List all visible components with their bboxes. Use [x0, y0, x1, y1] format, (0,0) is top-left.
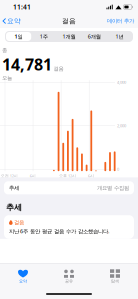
button[interactable]: 탐색: [92, 264, 138, 289]
staticText: 오전 12시: [1, 173, 18, 178]
staticText: 6시: [30, 173, 36, 178]
staticText: 14,781: [2, 54, 52, 75]
staticText: 1주: [40, 33, 48, 40]
button[interactable]: 요약: [0, 14, 24, 28]
staticText: 걸음: [62, 17, 76, 25]
staticText: 추세: [9, 185, 19, 191]
staticText: 지난 6주 동안 평균 걸음 수가 감소했습니다.: [9, 228, 109, 235]
button[interactable]: 공유: [46, 264, 92, 289]
staticText: 6시: [88, 173, 94, 178]
staticText: 공유: [65, 279, 73, 284]
button[interactable]: 요약: [0, 264, 46, 289]
button[interactable]: 1년: [107, 32, 132, 41]
staticText: 총: [2, 47, 7, 54]
staticText: 11:41: [13, 3, 31, 11]
staticText: 개요별 수집됨: [97, 185, 129, 191]
staticText: 추세: [6, 202, 22, 212]
staticText: 1일: [15, 33, 23, 40]
staticText: 요약: [7, 17, 21, 25]
staticText: 탐색: [111, 279, 119, 284]
staticText: 4,000: [117, 79, 126, 85]
button[interactable]: 걸음: [4, 215, 134, 239]
staticText: 걸음: [14, 219, 24, 226]
staticText: 1년: [115, 33, 123, 40]
staticText: 오늘: [2, 75, 12, 81]
staticText: 2,000: [117, 123, 126, 128]
button[interactable]: 추세: [4, 181, 134, 194]
staticText: 걸음: [53, 65, 63, 72]
staticText: 0: [117, 166, 119, 172]
staticText: 요약: [19, 279, 27, 284]
staticText: 6개월: [88, 33, 101, 40]
button[interactable]: 1일: [6, 32, 31, 41]
button[interactable]: 데이터 추가: [103, 14, 138, 28]
staticText: 1개월: [62, 33, 75, 40]
button[interactable]: 1주: [31, 32, 56, 41]
staticText: 데이터 추가: [107, 18, 134, 24]
staticText: 오후 12시: [59, 173, 76, 178]
button[interactable]: 6개월: [82, 32, 107, 41]
button[interactable]: 1개월: [56, 32, 82, 41]
